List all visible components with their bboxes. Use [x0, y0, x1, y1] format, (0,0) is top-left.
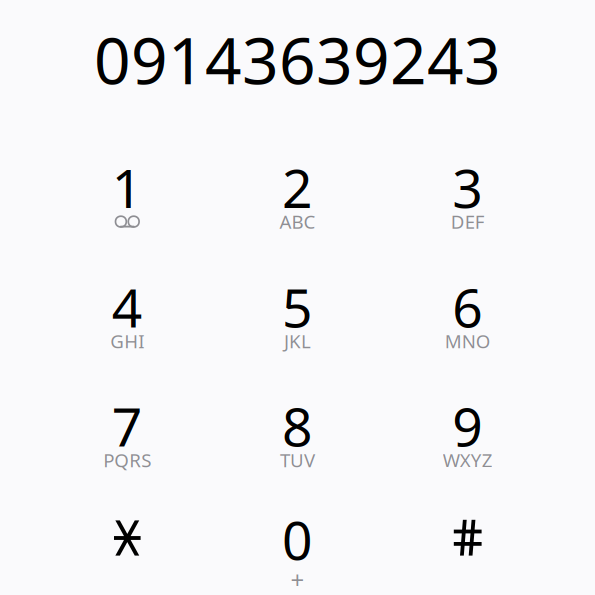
button[interactable]: Seven P Q R S [69, 388, 185, 498]
staticText: 6 [452, 271, 483, 342]
button[interactable]: Star [69, 504, 185, 595]
staticText: PQRS [103, 447, 151, 472]
staticText: 3 [452, 152, 483, 223]
staticText: 1 [112, 152, 143, 223]
staticText: 4 [112, 271, 143, 342]
staticText: GHI [110, 328, 144, 353]
button[interactable]: Four G H I [69, 269, 185, 379]
staticText: 8 [282, 390, 313, 461]
staticText: 5 [282, 271, 313, 342]
staticText: 9 [452, 390, 483, 461]
button[interactable]: One, Voicemail [69, 149, 185, 259]
staticText: JKL [284, 328, 311, 353]
button[interactable]: Zero, Plus [239, 504, 355, 595]
button[interactable]: Nine W X Y Z [410, 388, 526, 498]
staticText: + [290, 564, 304, 595]
staticText: TUV [280, 447, 315, 472]
staticText: DEF [451, 209, 485, 234]
staticText: MNO [445, 328, 491, 353]
staticText: 7 [112, 390, 143, 461]
button[interactable]: 09143639243 [94, 17, 501, 102]
button[interactable]: Two A B C [239, 149, 355, 259]
button[interactable]: Five J K L [239, 269, 355, 379]
button[interactable]: Pound [410, 504, 526, 595]
button[interactable]: Six M N O [410, 269, 526, 379]
staticText: 09143639243 [94, 17, 501, 102]
button[interactable]: Eight T U V [239, 388, 355, 498]
staticText: ABC [279, 209, 315, 234]
button[interactable]: Three D E F [410, 149, 526, 259]
staticText: 0 [282, 504, 313, 575]
staticText: WXYZ [443, 447, 493, 472]
staticText: 2 [282, 152, 313, 223]
